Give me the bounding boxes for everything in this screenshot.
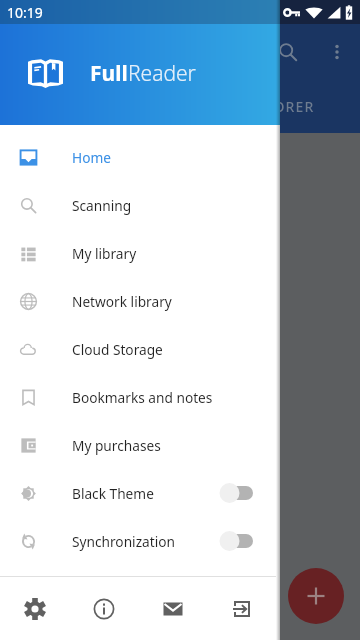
button[interactable]: My purchases <box>0 421 276 469</box>
staticText: Full <box>90 59 128 88</box>
button[interactable]: Synchronization <box>0 517 276 565</box>
button[interactable]: Scanning <box>0 181 276 229</box>
staticText: Cloud Storage <box>72 340 163 359</box>
button[interactable]: Black Theme <box>0 469 276 517</box>
staticText: My library <box>72 244 137 263</box>
staticText: My purchases <box>72 436 161 455</box>
staticText: EXPLORER <box>237 97 315 116</box>
staticText: 10:19 <box>7 3 43 22</box>
staticText: Bookmarks and notes <box>72 388 213 407</box>
button[interactable]: Home <box>0 133 276 181</box>
button[interactable]: Settings <box>0 577 69 640</box>
button[interactable]: Add <box>288 568 344 624</box>
button[interactable]: Cloud Storage <box>0 325 276 373</box>
button[interactable]: More options <box>313 28 360 76</box>
staticText: Network library <box>72 292 172 311</box>
button[interactable]: My library <box>0 229 276 277</box>
button[interactable]: Exit <box>207 577 276 640</box>
staticText: Scanning <box>72 196 132 215</box>
button[interactable]: Network library <box>0 277 276 325</box>
staticText: Reader <box>128 59 196 88</box>
button[interactable]: Synchronization toggle <box>219 529 255 553</box>
staticText: Synchronization <box>72 532 175 551</box>
button[interactable]: Mail <box>138 577 207 640</box>
button[interactable]: Black Theme toggle <box>219 481 255 505</box>
button[interactable]: Search <box>264 28 312 76</box>
button[interactable]: Bookmarks and notes <box>0 373 276 421</box>
button[interactable]: Info <box>69 577 138 640</box>
button[interactable]: EXPLORER <box>0 80 360 133</box>
staticText: Home <box>72 148 111 167</box>
staticText: Black Theme <box>72 484 154 503</box>
